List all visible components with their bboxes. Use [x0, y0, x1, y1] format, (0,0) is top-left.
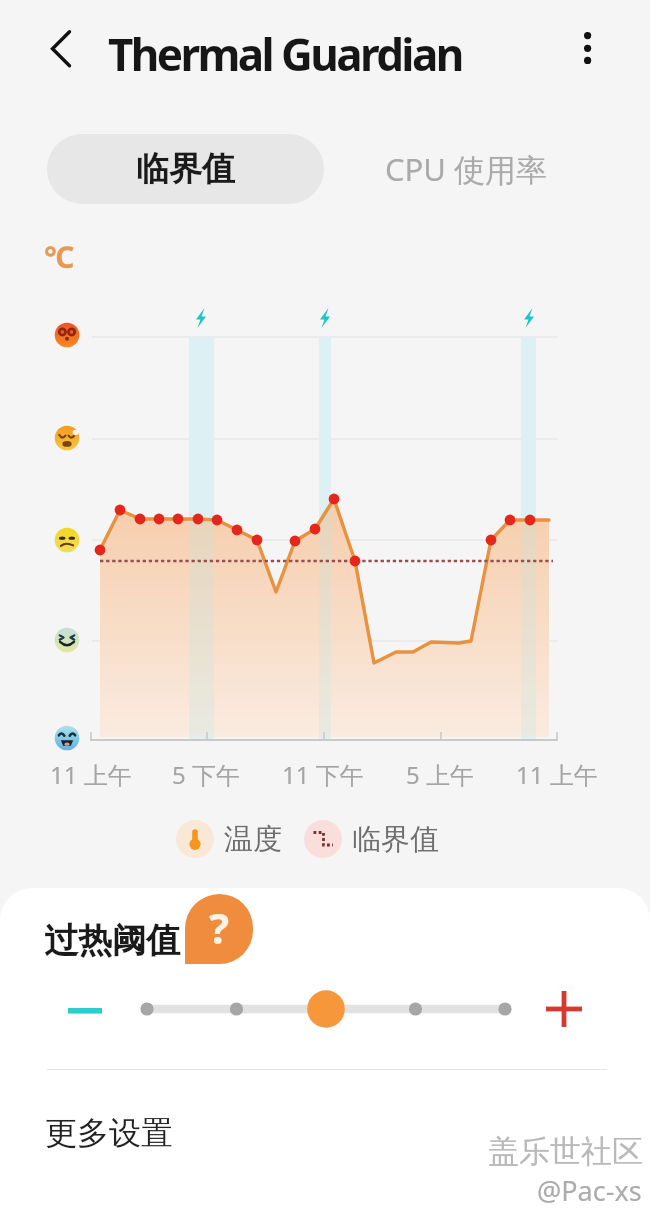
staticText: 11 上午: [50, 758, 132, 791]
button[interactable]: 临界值: [47, 134, 324, 204]
staticText: ℃: [44, 236, 75, 277]
staticText: 11 上午: [516, 758, 598, 791]
staticText: 5 下午: [172, 758, 240, 791]
button[interactable]: More options: [558, 17, 608, 67]
button[interactable]: Increase: [537, 982, 591, 1036]
staticText: 5 上午: [406, 758, 474, 791]
staticText: @Pac-xs: [537, 1172, 642, 1209]
staticText: 11 下午: [282, 758, 364, 791]
button[interactable]: Threshold level: [127, 985, 521, 1033]
staticText: 盖乐世社区: [488, 1132, 643, 1171]
staticText: 临界值: [352, 821, 439, 858]
staticText: ?: [209, 899, 230, 956]
staticText: 温度: [224, 821, 282, 858]
staticText: CPU 使用率: [385, 148, 548, 190]
button[interactable]: 更多设置: [0, 1094, 650, 1168]
staticText: 更多设置: [45, 1113, 173, 1153]
button[interactable]: CPU 使用率: [361, 134, 571, 204]
staticText: 过热阈值: [44, 919, 180, 962]
staticText: Thermal Guardian: [108, 24, 462, 84]
button[interactable]: Decrease: [58, 985, 112, 1039]
button[interactable]: Back: [36, 21, 86, 71]
button[interactable]: Help: [185, 894, 253, 964]
staticText: 临界值: [136, 148, 235, 190]
